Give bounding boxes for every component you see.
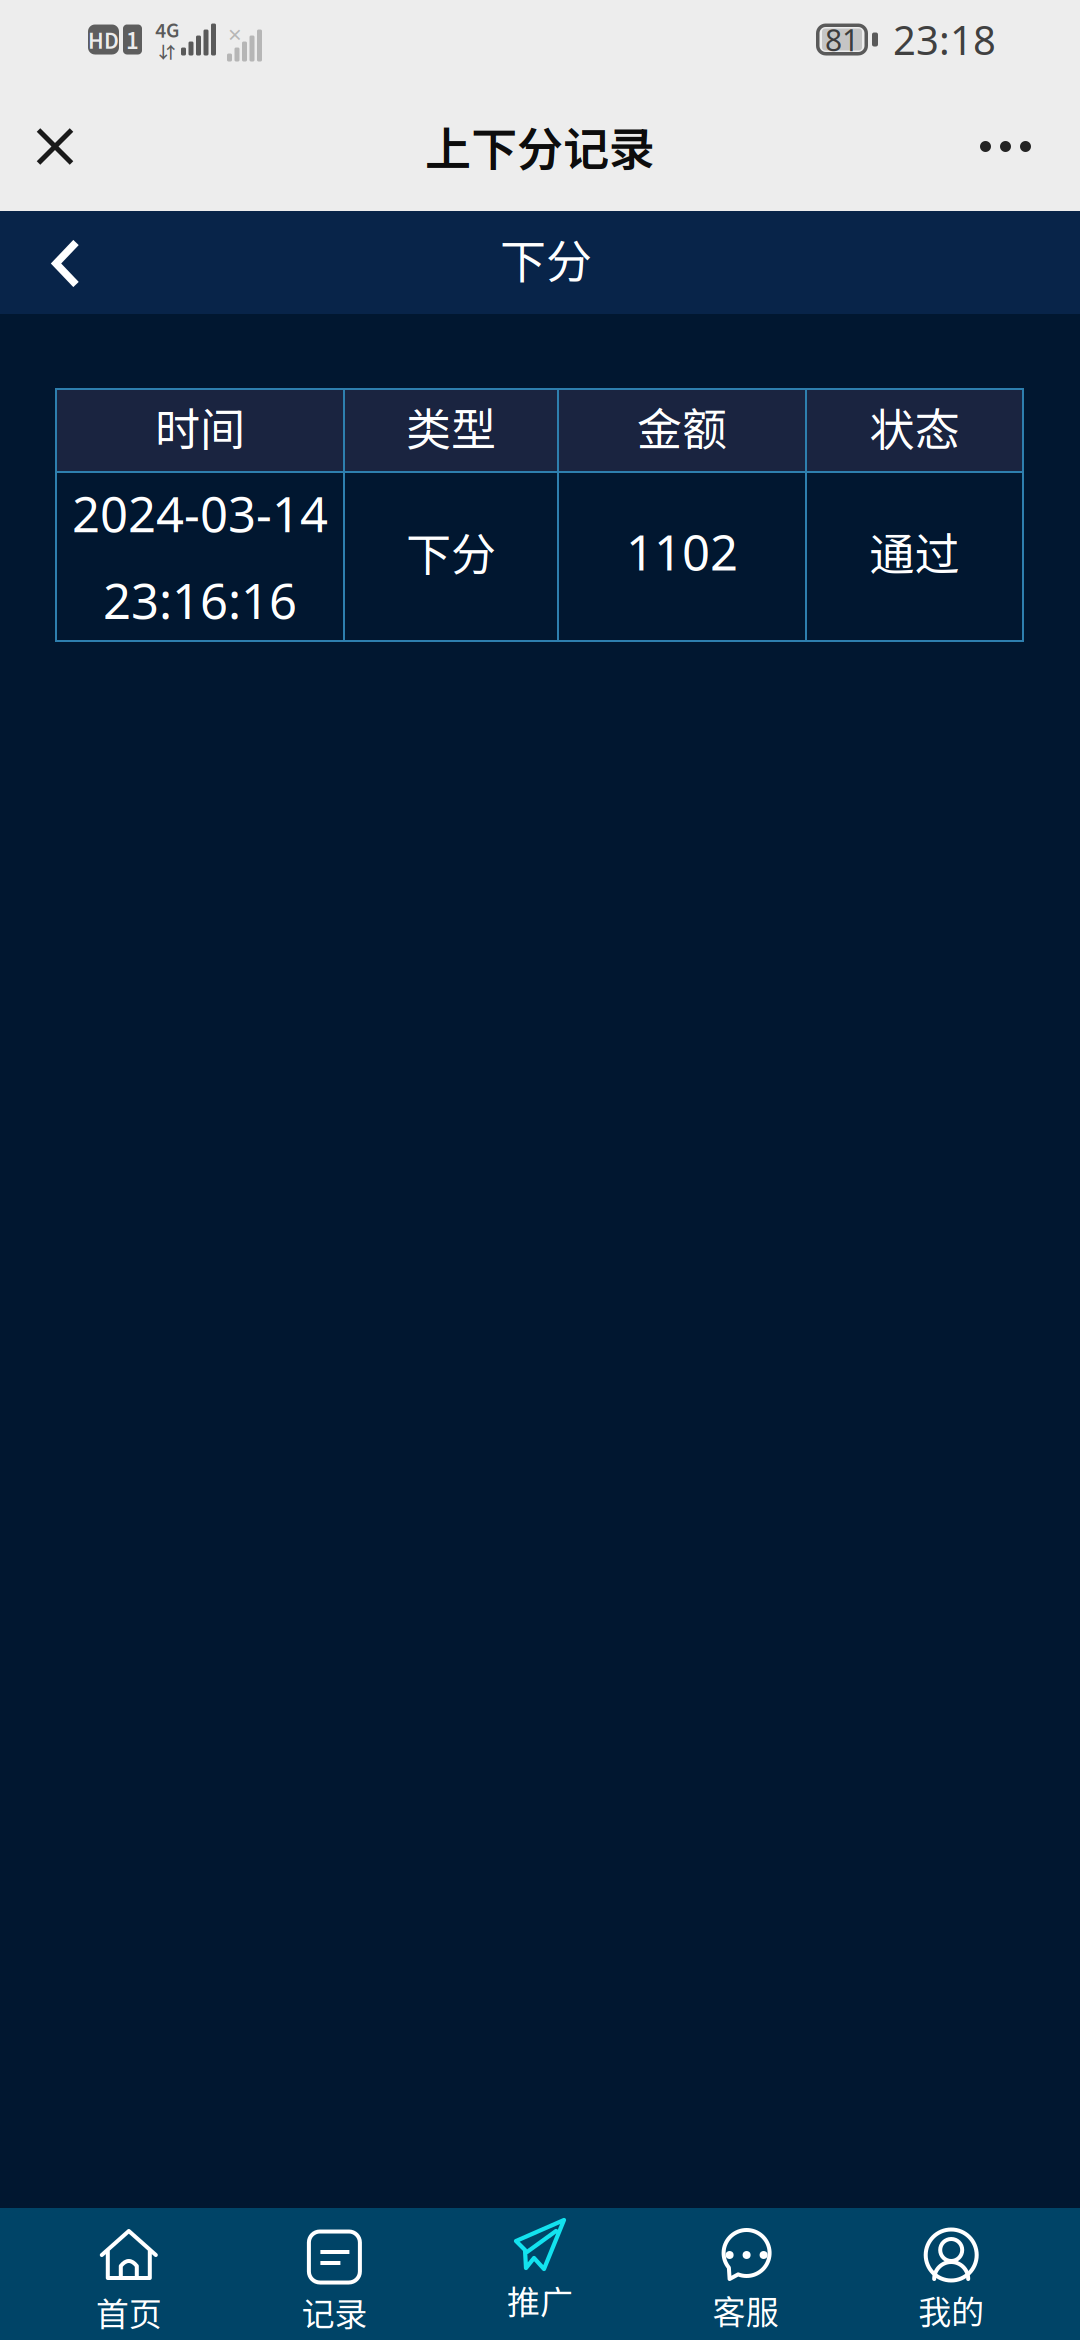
staticText: 通过	[869, 519, 959, 584]
button[interactable]: 我的	[848, 2208, 1054, 2340]
staticText: HD	[88, 24, 119, 55]
staticText: 类型	[406, 394, 496, 459]
staticText: 上下分记录	[425, 113, 655, 179]
staticText: ×	[228, 17, 242, 50]
button[interactable]: 首页	[26, 2208, 232, 2340]
staticText: 状态	[869, 394, 959, 459]
staticText: 客服	[713, 2286, 779, 2334]
staticText: 我的	[918, 2286, 984, 2334]
staticText: 首页	[96, 2288, 162, 2336]
staticText: 81	[825, 19, 859, 60]
staticText: 下分	[500, 225, 592, 292]
staticText: 1	[126, 24, 139, 55]
staticText: 1102	[626, 518, 738, 585]
staticText: 推广	[507, 2276, 573, 2324]
staticText: 下分	[406, 519, 496, 584]
staticText: 23:16:16	[103, 566, 297, 633]
staticText: 时间	[155, 394, 245, 459]
button[interactable]: 记录	[232, 2208, 437, 2340]
staticText: 4G	[155, 15, 179, 43]
button[interactable]: 客服	[643, 2208, 848, 2340]
button[interactable]: 推广	[437, 2208, 643, 2340]
button[interactable]: 关闭	[0, 95, 110, 198]
staticText: 23:18	[893, 12, 996, 67]
staticText: 2024-03-14	[72, 480, 328, 546]
staticText: 记录	[301, 2288, 367, 2336]
button[interactable]: 更多	[981, 95, 1080, 198]
button[interactable]: 返回	[0, 211, 108, 314]
staticText: 金额	[637, 394, 727, 459]
staticText: ⇵	[158, 39, 175, 63]
